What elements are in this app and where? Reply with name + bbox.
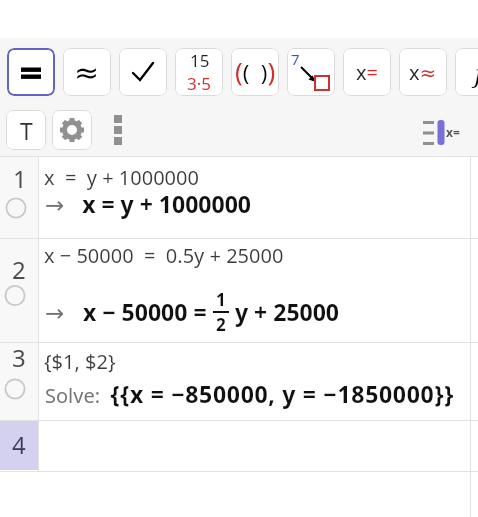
button[interactable]: 7: [287, 48, 335, 96]
button[interactable]: [52, 110, 92, 150]
staticText: (( )): [235, 53, 276, 88]
staticText: T: [20, 115, 33, 146]
staticText: f: [475, 56, 478, 89]
button[interactable]: ≈: [63, 48, 111, 96]
staticText: x≈: [409, 59, 437, 86]
button[interactable]: [119, 48, 167, 96]
button[interactable]: f: [455, 48, 478, 96]
staticText: 7: [291, 49, 300, 69]
staticText: 4: [12, 428, 26, 461]
button[interactable]: [110, 113, 126, 147]
staticText: x − 50000 = 0.5y + 25000: [44, 242, 284, 269]
staticText: {$1, $2}: [44, 348, 116, 375]
button[interactable]: x=: [343, 48, 391, 96]
button[interactable]: x=: [420, 116, 468, 148]
staticText: x = y + 1000000: [44, 164, 199, 191]
staticText: 2: [216, 313, 226, 334]
button[interactable]: T: [6, 110, 46, 150]
button[interactable]: 15: [175, 48, 223, 96]
staticText: 1: [216, 288, 226, 311]
staticText: y + 25000: [229, 296, 340, 327]
staticText: 3·5: [187, 72, 212, 95]
staticText: →: [45, 296, 83, 327]
button[interactable]: [7, 48, 55, 96]
staticText: 15: [190, 49, 210, 72]
staticText: x=: [356, 59, 379, 86]
button[interactable]: (( )): [231, 48, 279, 96]
staticText: x=: [446, 124, 460, 140]
staticText: 3: [12, 341, 26, 374]
staticText: Solve: {{x = −850000, y = −1850000}}: [45, 378, 454, 409]
staticText: ≈: [74, 55, 100, 90]
staticText: 1: [13, 162, 27, 195]
staticText: 2: [12, 253, 26, 286]
staticText: → x = y + 1000000: [45, 188, 251, 219]
staticText: x − 50000 =: [83, 296, 213, 327]
button[interactable]: x≈: [399, 48, 447, 96]
